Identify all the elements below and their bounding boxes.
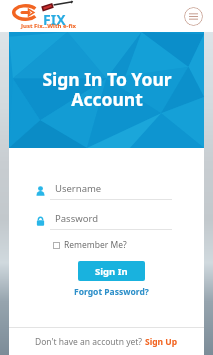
staticText: Remember Me? [64,239,127,251]
staticText: Sign In To Your Account [42,67,172,112]
staticText: Password [55,212,98,225]
staticText: Sign In [95,265,128,278]
staticText: FIX [43,10,66,29]
button[interactable]: Remember Me? [53,239,204,251]
staticText: Forgot Password? [74,286,149,298]
staticText: Just Fix...With e-fix [21,22,77,30]
button[interactable]: Forgot Password? [74,286,149,298]
staticText: Sign Up [145,336,178,348]
staticText: Username [55,182,102,195]
button[interactable]: Sign Up [145,336,178,348]
staticText: Don't have an accoutn yet? [35,336,145,348]
button[interactable]: Sign In [78,261,145,281]
button[interactable]: Open navigation menu [184,7,203,26]
